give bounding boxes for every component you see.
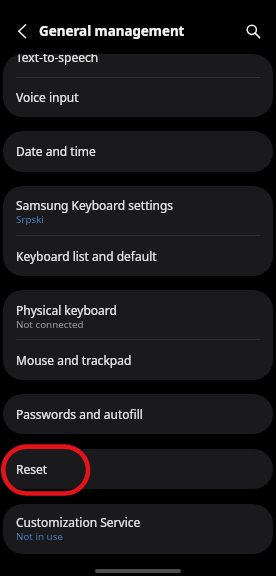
staticText: General management bbox=[39, 22, 185, 40]
staticText: Text-to-speech bbox=[16, 54, 99, 65]
button[interactable]: Voice input bbox=[3, 78, 273, 117]
staticText: Reset bbox=[16, 461, 48, 477]
staticText: Samsung Keyboard settings bbox=[16, 197, 174, 213]
button[interactable]: Text-to-speech bbox=[3, 54, 273, 77]
staticText: Not connected bbox=[16, 318, 84, 331]
staticText: Date and time bbox=[16, 143, 96, 159]
button[interactable]: Customization Service bbox=[3, 504, 273, 554]
button[interactable]: Physical keyboard bbox=[3, 290, 273, 339]
staticText: Keyboard list and default bbox=[16, 248, 157, 264]
button[interactable]: Mouse and trackpad bbox=[3, 340, 273, 380]
button[interactable]: Keyboard list and default bbox=[3, 236, 273, 276]
button[interactable]: Reset bbox=[3, 449, 273, 489]
button[interactable]: Samsung Keyboard settings bbox=[3, 186, 273, 235]
staticText: Not in use bbox=[16, 530, 63, 543]
staticText: Passwords and autofill bbox=[16, 406, 143, 422]
staticText: Customization Service bbox=[16, 514, 141, 530]
button[interactable]: Date and time bbox=[3, 131, 273, 172]
staticText: Voice input bbox=[16, 89, 79, 105]
button[interactable]: Navigate up bbox=[9, 19, 34, 44]
button[interactable]: Search bbox=[240, 18, 265, 43]
staticText: Srpski bbox=[16, 213, 44, 226]
staticText: Mouse and trackpad bbox=[16, 352, 132, 368]
staticText: Physical keyboard bbox=[16, 302, 117, 318]
button[interactable]: Passwords and autofill bbox=[3, 394, 273, 434]
